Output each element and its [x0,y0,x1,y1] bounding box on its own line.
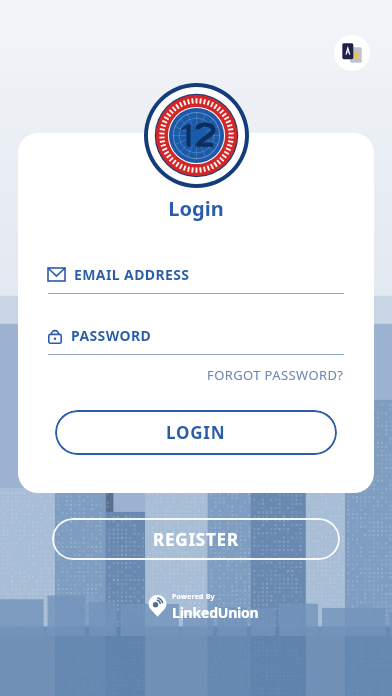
staticText: Login [18,195,374,222]
staticText: REGISTER [153,528,239,551]
button[interactable]: FORGOT PASSWORD? [207,363,344,387]
staticText: Powered By [172,592,215,602]
button[interactable]: REGISTER [52,518,340,560]
button[interactable]: LOGIN [55,410,337,455]
staticText: EMAIL ADDRESS [74,265,190,284]
staticText: FORGOT PASSWORD? [207,366,344,384]
button[interactable]: Language [334,35,370,71]
staticText: LinkedUnion [172,603,259,618]
staticText: PASSWORD [71,326,152,345]
staticText: LOGIN [166,421,226,444]
